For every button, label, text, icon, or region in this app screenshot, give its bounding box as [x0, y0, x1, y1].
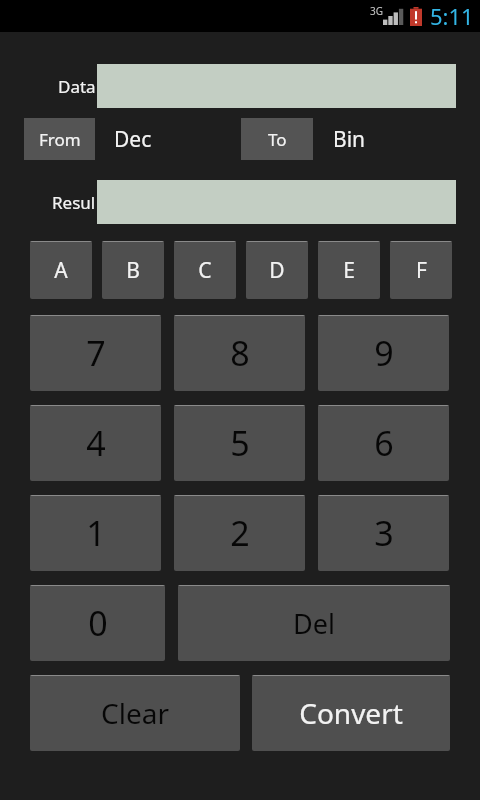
staticText: 6	[374, 420, 394, 466]
staticText: E	[343, 256, 355, 285]
staticText: C	[198, 256, 212, 285]
staticText: Convert	[299, 694, 403, 732]
button[interactable]: From	[24, 118, 95, 160]
staticText: 2	[230, 510, 250, 556]
staticText: 1	[86, 510, 106, 556]
button[interactable]: 7	[30, 315, 161, 391]
staticText: 5	[230, 420, 250, 466]
button[interactable]: 8	[174, 315, 305, 391]
button[interactable]: 1	[30, 495, 161, 571]
staticText: 3	[374, 510, 394, 556]
button[interactable]: 6	[318, 405, 449, 481]
staticText: 7	[86, 330, 106, 376]
button[interactable]: 3	[318, 495, 449, 571]
staticText: Del	[293, 605, 335, 642]
button[interactable]: 5	[174, 405, 305, 481]
staticText: Dec	[114, 125, 152, 154]
button[interactable]: F	[390, 241, 452, 299]
staticText: Clear	[101, 694, 169, 732]
staticText: To	[268, 128, 287, 151]
button[interactable]: 0	[30, 585, 165, 661]
staticText: D	[269, 256, 285, 285]
staticText: 0	[88, 600, 108, 646]
staticText: 5:11	[430, 1, 474, 31]
button[interactable]: 2	[174, 495, 305, 571]
staticText: B	[126, 256, 140, 285]
button[interactable]: A	[30, 241, 92, 299]
button[interactable]: Dec	[114, 118, 241, 160]
staticText: Bin	[333, 125, 366, 154]
staticText: 8	[230, 330, 250, 376]
button[interactable]: Del	[178, 585, 450, 661]
button[interactable]: C	[174, 241, 236, 299]
button[interactable]: To	[241, 118, 313, 160]
button[interactable]: Convert	[252, 675, 450, 751]
button[interactable]: Clear	[30, 675, 240, 751]
staticText: 4	[86, 420, 106, 466]
staticText: 9	[374, 330, 394, 376]
staticText: From	[39, 128, 81, 151]
button[interactable]: D	[246, 241, 308, 299]
staticText: 3G	[370, 4, 383, 18]
staticText: A	[54, 256, 68, 285]
button[interactable]: B	[102, 241, 164, 299]
button[interactable]: 4	[30, 405, 161, 481]
staticText: Data	[58, 75, 96, 98]
button[interactable]: 9	[318, 315, 449, 391]
button[interactable]: E	[318, 241, 380, 299]
button[interactable]: Bin	[333, 118, 433, 160]
staticText: Resul	[52, 191, 96, 214]
staticText: F	[416, 256, 427, 285]
